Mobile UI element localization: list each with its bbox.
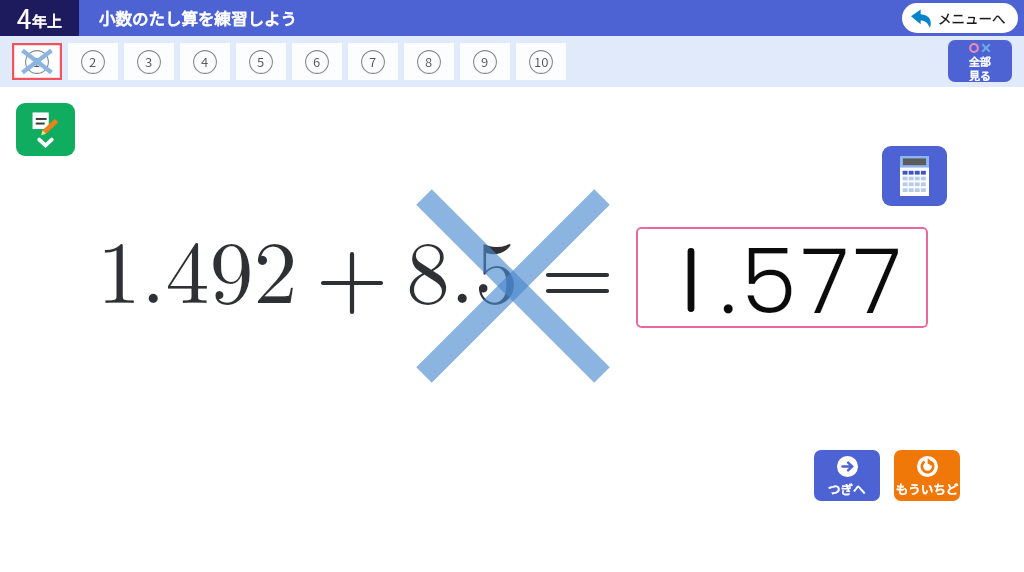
staticText: 9	[481, 52, 489, 71]
staticText: 1.492	[97, 204, 298, 329]
staticText: 7	[369, 52, 377, 71]
staticText: 3	[145, 52, 153, 71]
staticText: 4	[201, 52, 209, 71]
button[interactable]: 3	[124, 43, 174, 80]
staticText: 10	[534, 52, 549, 71]
staticText: 小数のたし算を練習しよう	[99, 6, 297, 30]
button[interactable]: もういちど	[894, 450, 960, 501]
button[interactable]: 4	[180, 43, 230, 80]
staticText: 1	[33, 52, 41, 71]
button[interactable]: 全部	[948, 40, 1012, 82]
button[interactable]: 7	[348, 43, 398, 80]
staticText: 8.5	[406, 204, 519, 329]
staticText: 6	[313, 52, 321, 71]
staticText: つぎへ	[828, 479, 866, 497]
staticText: 見る	[969, 67, 991, 81]
button[interactable]: つぎへ	[814, 450, 880, 501]
staticText: 年上	[32, 10, 63, 32]
button[interactable]: 8	[404, 43, 454, 80]
staticText: 4	[17, 0, 32, 35]
button[interactable]: メニューへ	[902, 3, 1018, 33]
button[interactable]: 9	[460, 43, 510, 80]
button[interactable]: 4	[0, 0, 79, 36]
staticText: .577	[720, 227, 906, 320]
staticText: メニューへ	[938, 8, 1006, 28]
button[interactable]: .577	[636, 227, 928, 328]
button[interactable]: 5	[236, 43, 286, 80]
staticText: もういちど	[896, 479, 959, 497]
staticText: 8	[425, 52, 433, 71]
staticText: 2	[89, 52, 97, 71]
button[interactable]: 6	[292, 43, 342, 80]
button[interactable]: 2	[68, 43, 118, 80]
button[interactable]: 10	[516, 43, 566, 80]
staticText: 5	[257, 52, 265, 71]
button[interactable]: 計算機	[882, 146, 947, 206]
staticText: 全部	[969, 53, 991, 67]
button[interactable]: メモ	[16, 103, 75, 156]
button[interactable]: 1	[12, 43, 62, 80]
